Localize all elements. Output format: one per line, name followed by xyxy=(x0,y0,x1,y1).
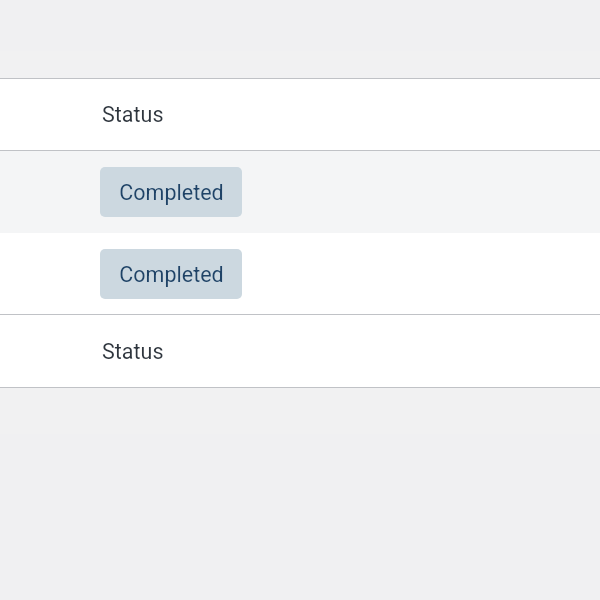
button[interactable]: Status xyxy=(0,315,600,387)
staticText: Completed xyxy=(119,180,224,205)
button[interactable]: Completed xyxy=(0,233,600,314)
button[interactable]: Completed xyxy=(100,249,242,299)
button[interactable]: Completed xyxy=(0,151,600,233)
staticText: Status xyxy=(102,339,164,364)
staticText: Status xyxy=(102,102,164,127)
button[interactable]: Completed xyxy=(100,167,242,217)
staticText: Completed xyxy=(119,262,224,287)
button[interactable]: Status xyxy=(0,79,600,150)
